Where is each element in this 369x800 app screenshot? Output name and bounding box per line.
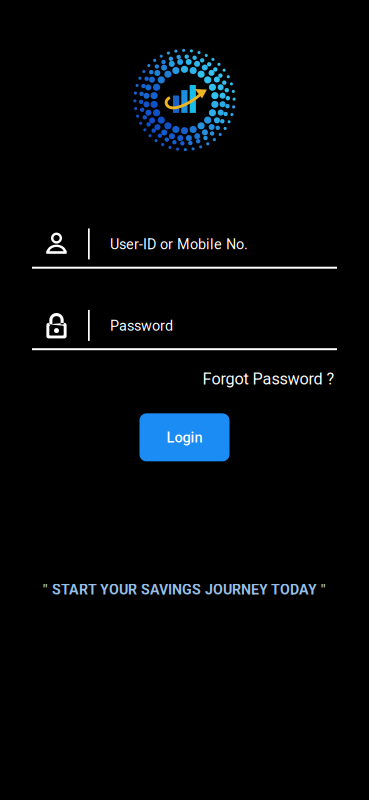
button[interactable]: Forgot Password ? (200, 366, 336, 391)
button[interactable]: User-ID or Mobile No. (32, 228, 337, 269)
staticText: Login (166, 429, 202, 446)
button[interactable]: Password (32, 310, 337, 350)
button[interactable]: Login (139, 413, 229, 461)
staticText: " START YOUR SAVINGS JOURNEY TODAY " (43, 581, 326, 598)
staticText: User-ID or Mobile No. (110, 236, 248, 253)
staticText: Password (110, 317, 173, 334)
staticText: Forgot Password ? (202, 369, 334, 388)
